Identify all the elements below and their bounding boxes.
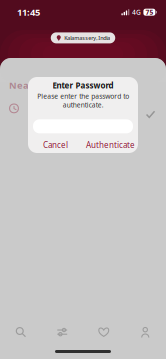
button[interactable]: Kalamassery, India [51,32,115,43]
staticText: Nearby [9,79,44,91]
staticText: Please enter the password to authenticat… [37,92,129,109]
button[interactable]: Authenticate [83,137,138,153]
button[interactable]: Search [0,326,41,337]
staticText: 4G [132,8,141,17]
staticText: Authenticate [86,140,135,150]
button[interactable]: Filters [41,326,83,337]
staticText: Kalamassery, India [64,34,110,41]
staticText: 11:45 [17,6,40,18]
button[interactable]: Profile [124,326,166,337]
button[interactable]: Cancel [28,137,83,153]
button[interactable]: Favorites [83,326,124,337]
staticText: Cancel [43,140,68,150]
staticText: Enter Password [52,80,113,91]
staticText: 75 [145,8,153,17]
